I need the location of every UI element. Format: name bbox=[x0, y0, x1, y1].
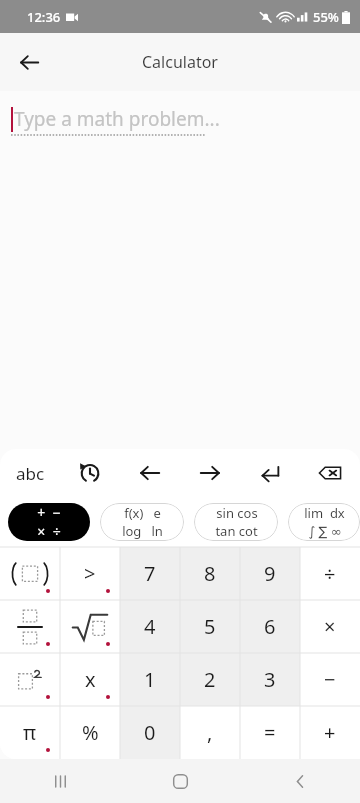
button[interactable]: + − bbox=[8, 503, 90, 541]
staticText: 4 bbox=[144, 613, 156, 640]
staticText: > bbox=[84, 560, 96, 587]
button[interactable]: ÷ bbox=[300, 547, 360, 600]
button[interactable]: Backspace bbox=[300, 449, 360, 497]
button[interactable]: sin cos bbox=[194, 503, 278, 541]
button[interactable]: 5 bbox=[180, 600, 240, 653]
button[interactable]: , bbox=[180, 706, 240, 759]
button[interactable]: lim dx bbox=[288, 503, 360, 541]
staticText: 12:36 bbox=[27, 8, 61, 26]
staticText: ÷ bbox=[324, 560, 336, 587]
staticText: 3 bbox=[264, 666, 276, 693]
staticText: % bbox=[82, 719, 99, 746]
staticText: 55% bbox=[313, 8, 339, 26]
button[interactable]: Move right bbox=[180, 449, 240, 497]
staticText: 7 bbox=[144, 560, 156, 587]
staticText: π bbox=[23, 719, 37, 746]
staticText: × bbox=[324, 613, 336, 640]
staticText: Calculator bbox=[142, 51, 218, 73]
staticText: log ln bbox=[122, 522, 163, 540]
button[interactable]: − bbox=[300, 653, 360, 706]
button[interactable]: x bbox=[60, 653, 120, 706]
staticText: tan cot bbox=[215, 522, 258, 540]
staticText: + − bbox=[37, 503, 61, 522]
button[interactable]: Recent apps bbox=[0, 759, 120, 803]
staticText: ∫ ∑ ∞ bbox=[308, 522, 342, 540]
staticText: 9 bbox=[264, 560, 276, 587]
button[interactable]: 1 bbox=[120, 653, 180, 706]
button[interactable]: abc bbox=[0, 449, 60, 497]
button[interactable]: π bbox=[0, 706, 60, 759]
staticText: 1 bbox=[144, 666, 156, 693]
button[interactable]: 6 bbox=[240, 600, 300, 653]
button[interactable]: 7 bbox=[120, 547, 180, 600]
button[interactable]: = bbox=[240, 706, 300, 759]
staticText: × ÷ bbox=[37, 522, 61, 541]
button[interactable]: f(x) e bbox=[100, 503, 184, 541]
button[interactable]: > bbox=[60, 547, 120, 600]
staticText: 2 bbox=[204, 666, 216, 693]
button[interactable]: × bbox=[300, 600, 360, 653]
staticText: 6 bbox=[264, 613, 276, 640]
staticText: , bbox=[207, 719, 213, 746]
staticText: x bbox=[85, 666, 96, 693]
button[interactable]: Enter bbox=[240, 449, 300, 497]
button[interactable]: 9 bbox=[240, 547, 300, 600]
staticText: abc bbox=[16, 462, 45, 485]
button[interactable]: 2 bbox=[180, 653, 240, 706]
staticText: 0 bbox=[144, 719, 156, 746]
staticText: = bbox=[264, 719, 276, 746]
staticText: sin cos bbox=[216, 504, 258, 522]
button[interactable]: + bbox=[300, 706, 360, 759]
staticText: lim dx bbox=[304, 504, 345, 522]
staticText: 5 bbox=[204, 613, 216, 640]
button[interactable]: 0 bbox=[120, 706, 180, 759]
button[interactable]: Home bbox=[120, 759, 240, 803]
staticText: 8 bbox=[204, 560, 216, 587]
staticText: + bbox=[324, 719, 336, 746]
button[interactable]: 8 bbox=[180, 547, 240, 600]
staticText: f(x) e bbox=[124, 504, 161, 522]
button[interactable]: Back bbox=[10, 43, 48, 81]
button[interactable]: 3 bbox=[240, 653, 300, 706]
button[interactable]: Square root bbox=[60, 600, 120, 653]
button[interactable]: Move left bbox=[120, 449, 180, 497]
button[interactable]: Back bbox=[240, 759, 360, 803]
button[interactable]: Parentheses bbox=[0, 547, 60, 600]
button[interactable]: % bbox=[60, 706, 120, 759]
staticText: − bbox=[324, 666, 336, 693]
button[interactable]: Fraction bbox=[0, 600, 60, 653]
button[interactable]: History bbox=[60, 449, 120, 497]
staticText: Type a math problem... bbox=[14, 106, 220, 132]
button[interactable]: 4 bbox=[120, 600, 180, 653]
button[interactable]: Power bbox=[0, 653, 60, 706]
